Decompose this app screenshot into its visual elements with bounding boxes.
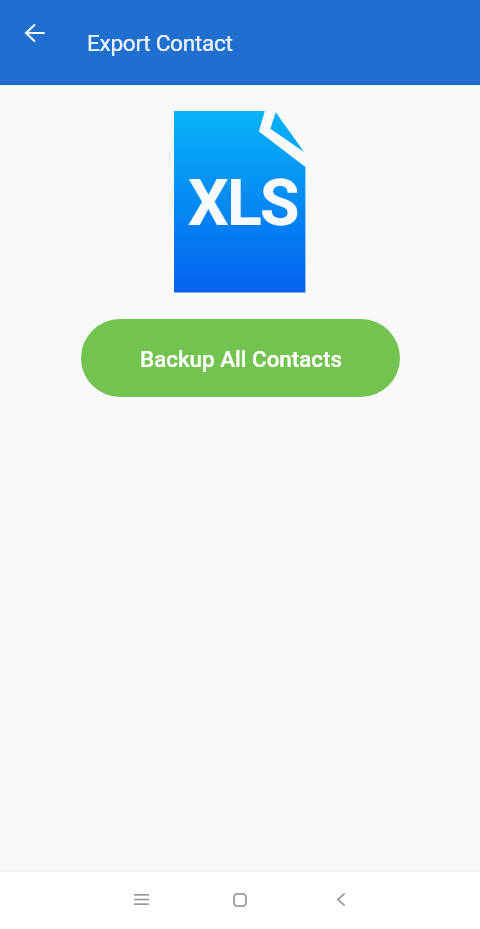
button[interactable]: Home	[190, 872, 290, 929]
staticText: XLS	[188, 166, 298, 241]
button[interactable]: Recent apps	[90, 872, 190, 929]
button[interactable]: Back	[290, 872, 390, 929]
button[interactable]: Backup All Contacts	[81, 319, 400, 397]
staticText: Backup All Contacts	[140, 346, 342, 372]
staticText: Export Contact	[87, 30, 233, 57]
button[interactable]: Back	[11, 19, 58, 66]
